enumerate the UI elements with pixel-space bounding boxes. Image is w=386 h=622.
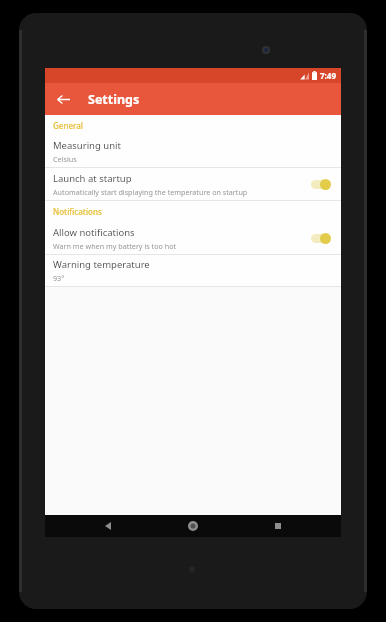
staticText: Automatically start displaying the tempe… [53, 187, 248, 197]
button[interactable]: Back [52, 88, 74, 110]
staticText: Launch at startup [53, 172, 132, 185]
button[interactable]: Measuring unit [45, 136, 341, 167]
staticText: 93° [53, 273, 65, 283]
button[interactable]: Allow notifications [45, 222, 341, 254]
staticText: Notifications [53, 206, 102, 217]
staticText: Celsius [53, 154, 77, 164]
button[interactable]: Warning temperature [45, 255, 341, 286]
staticText: General [53, 120, 83, 131]
staticText: Warning temperature [53, 258, 150, 271]
staticText: Allow notifications [53, 226, 135, 239]
staticText: Settings [88, 91, 140, 108]
button[interactable]: Back [97, 515, 119, 537]
button[interactable]: Toggle on [308, 175, 334, 193]
staticText: 7:49 [320, 70, 336, 81]
button[interactable]: Toggle on [308, 229, 334, 247]
button[interactable]: Recent apps [267, 515, 289, 537]
button[interactable]: Launch at startup [45, 168, 341, 200]
staticText: Measuring unit [53, 139, 121, 152]
button[interactable]: Home [182, 515, 204, 537]
staticText: Warn me when my battery is too hot [53, 241, 177, 251]
